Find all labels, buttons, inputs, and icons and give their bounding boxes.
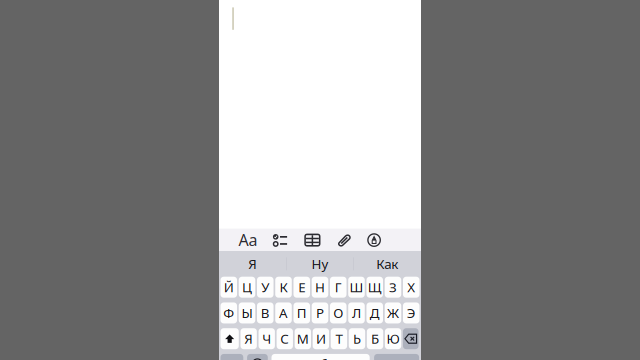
button[interactable]: П [293,302,310,323]
button[interactable]: Ь [349,328,365,349]
staticText: Ц [242,278,252,296]
staticText: О [333,304,343,322]
button[interactable]: Р [312,302,328,323]
button[interactable]: Ч [259,328,275,349]
staticText: А [279,304,288,322]
button[interactable]: О [330,302,346,323]
button[interactable]: З [385,277,401,298]
staticText: В [261,304,270,322]
staticText: К [279,278,287,296]
button[interactable]: Ы [239,302,255,323]
staticText: Б [371,330,379,347]
button[interactable]: Э [403,302,419,323]
staticText: Как [376,255,398,273]
staticText: пробел [300,356,342,360]
button[interactable]: Markup [360,229,388,251]
staticText: Ю [387,330,400,347]
button[interactable]: И [313,328,329,349]
button[interactable]: К [275,277,292,298]
button[interactable]: Checklist [266,229,294,252]
button[interactable]: Е [293,277,310,298]
staticText: Р [316,304,324,322]
staticText: У [261,278,269,296]
button[interactable]: Ж [385,302,401,323]
button[interactable]: Ц [239,277,255,298]
button[interactable]: Я [219,251,286,277]
button[interactable]: Ш [348,277,365,298]
button[interactable]: В [257,302,273,323]
staticText: Ну [311,255,328,273]
staticText: Aa [238,229,257,250]
staticText: Ь [353,330,361,347]
staticText: П [297,304,307,322]
button[interactable]: Attach file [330,229,358,251]
staticText: Й [224,278,234,296]
staticText: Э [407,304,416,322]
button[interactable]: Н [312,277,328,298]
staticText: Н [315,278,325,296]
staticText: Д [370,304,380,322]
staticText: Г [335,278,342,296]
staticText: С [280,330,289,347]
staticText: Щ [368,278,382,296]
button[interactable]: Shift [220,328,239,349]
button[interactable]: Д [366,302,383,323]
button[interactable]: Delete [403,328,419,349]
staticText: Ч [262,330,271,347]
staticText: Х [407,278,415,296]
staticText: З [389,278,397,296]
staticText: М [297,330,309,347]
staticText: Ж [387,304,399,322]
staticText: Л [352,304,361,322]
button[interactable]: Я [240,328,257,349]
staticText: Ы [241,304,252,322]
staticText: Я [244,330,253,347]
button[interactable]: Return [374,354,419,360]
button[interactable]: Й [220,277,237,298]
button[interactable]: Switch keyboard [247,354,268,360]
button[interactable]: Ф [220,302,237,323]
button[interactable]: Б [367,328,383,349]
staticText: Ф [223,304,234,322]
button[interactable]: Ю [385,328,401,349]
button[interactable]: Aa [234,229,262,251]
button[interactable]: А [275,302,292,323]
button[interactable]: Ну [286,251,354,277]
button[interactable]: Table [298,229,326,251]
button[interactable]: М [295,328,311,349]
staticText: Я [248,255,257,273]
staticText: Т [335,330,342,347]
button[interactable]: Как [354,251,421,277]
button[interactable]: Space [271,354,370,360]
staticText: Е [298,278,305,296]
button[interactable]: Л [348,302,365,323]
button[interactable]: Г [330,277,346,298]
button[interactable]: Т [331,328,347,349]
staticText: Ш [349,278,363,296]
button[interactable]: Х [403,277,419,298]
button[interactable]: С [277,328,293,349]
staticText: И [316,330,326,347]
button[interactable]: Щ [366,277,383,298]
button[interactable]: У [257,277,273,298]
button[interactable]: Numbers [220,354,243,360]
